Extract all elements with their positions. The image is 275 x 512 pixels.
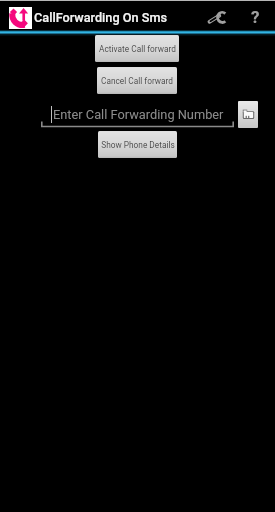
staticText: Cancel Call forward	[101, 76, 173, 86]
staticText: ?	[251, 7, 260, 27]
button[interactable]: Activate Call forward	[95, 35, 179, 62]
button[interactable]: Cancel Call forward	[97, 67, 177, 94]
staticText: CallForwarding On Sms	[34, 10, 167, 25]
button[interactable]: Show Phone Details	[98, 131, 177, 158]
button[interactable]: Pick contact	[238, 101, 258, 128]
staticText: Activate Call forward	[99, 44, 176, 54]
staticText: Show Phone Details	[101, 140, 175, 150]
button[interactable]: Help	[239, 1, 271, 31]
button[interactable]: Settings	[200, 2, 236, 32]
staticText: Enter Call Forwarding Number	[53, 107, 224, 122]
button[interactable]: Enter Call Forwarding Number	[41, 101, 234, 128]
